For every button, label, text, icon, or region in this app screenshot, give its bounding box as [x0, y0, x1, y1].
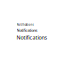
staticText: Notifications: [16, 23, 33, 26]
staticText: Notifications: [16, 34, 47, 41]
staticText: Notifications: [16, 28, 37, 33]
